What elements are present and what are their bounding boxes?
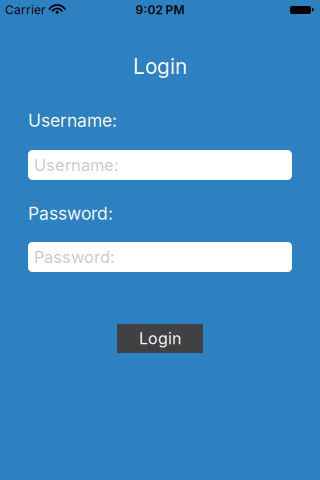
staticText: Login [133, 54, 187, 79]
staticText: Password: [34, 247, 115, 267]
button[interactable]: Username text field [28, 150, 292, 180]
staticText: Username: [34, 155, 119, 175]
staticText: Login [139, 329, 181, 348]
button[interactable]: Login [117, 324, 203, 353]
button[interactable]: Password text field [28, 242, 292, 272]
staticText: Carrier [5, 3, 46, 17]
staticText: 9:02 PM [135, 3, 184, 17]
staticText: Username: [28, 110, 117, 131]
staticText: Password: [28, 203, 113, 224]
